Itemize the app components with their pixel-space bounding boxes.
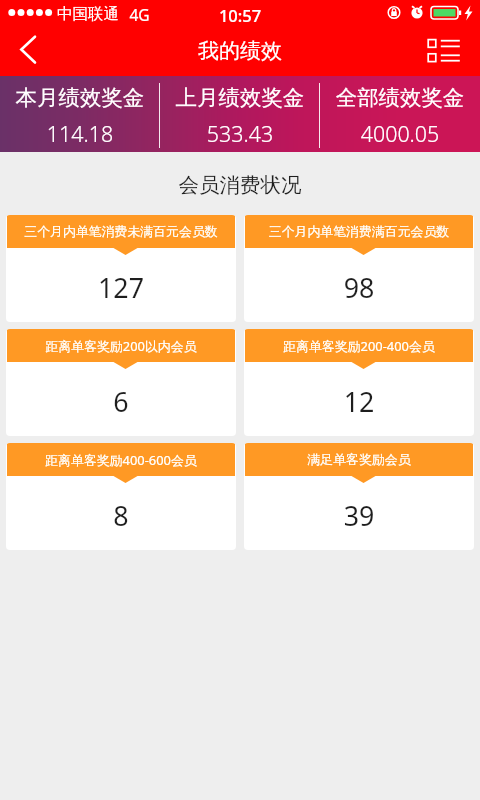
staticText: 10:57 [0, 4, 480, 26]
staticText: 6 [6, 383, 236, 420]
staticText: 4G [129, 4, 150, 25]
staticText: 4000.05 [320, 119, 480, 148]
staticText: 中国联通 [57, 4, 119, 24]
staticText: 本月绩效奖金 [0, 84, 160, 111]
button[interactable]: 满足单客奖励会员 [244, 443, 474, 550]
button[interactable]: 全部绩效奖金 [320, 76, 480, 152]
staticText: 39 [244, 497, 474, 534]
staticText: 三个月内单笔消费未满百元会员数 [7, 224, 235, 240]
button[interactable]: 距离单客奖励200以内会员 [6, 329, 236, 436]
staticText: 全部绩效奖金 [320, 84, 480, 111]
staticText: 距离单客奖励400-600会员 [7, 451, 235, 469]
button[interactable]: List view [420, 26, 480, 76]
button[interactable]: 三个月内单笔消费满百元会员数 [244, 215, 474, 322]
staticText: 114.18 [0, 119, 160, 148]
staticText: 距离单客奖励200-400会员 [245, 337, 473, 355]
staticText: 8 [6, 497, 236, 534]
staticText: 533.43 [160, 119, 320, 148]
button[interactable]: 上月绩效奖金 [160, 76, 320, 152]
button[interactable]: 距离单客奖励200-400会员 [244, 329, 474, 436]
staticText: 我的绩效 [0, 38, 480, 64]
staticText: 127 [6, 269, 236, 306]
staticText: 三个月内单笔消费满百元会员数 [245, 224, 473, 240]
button[interactable]: 距离单客奖励400-600会员 [6, 443, 236, 550]
staticText: 12 [244, 383, 474, 420]
button[interactable]: 本月绩效奖金 [0, 76, 160, 152]
staticText: 距离单客奖励200以内会员 [7, 337, 235, 355]
staticText: 会员消费状况 [0, 172, 480, 198]
button[interactable]: Back [0, 26, 50, 76]
staticText: 98 [244, 269, 474, 306]
button[interactable]: 三个月内单笔消费未满百元会员数 [6, 215, 236, 322]
staticText: 上月绩效奖金 [160, 84, 320, 111]
staticText: 满足单客奖励会员 [245, 452, 473, 468]
